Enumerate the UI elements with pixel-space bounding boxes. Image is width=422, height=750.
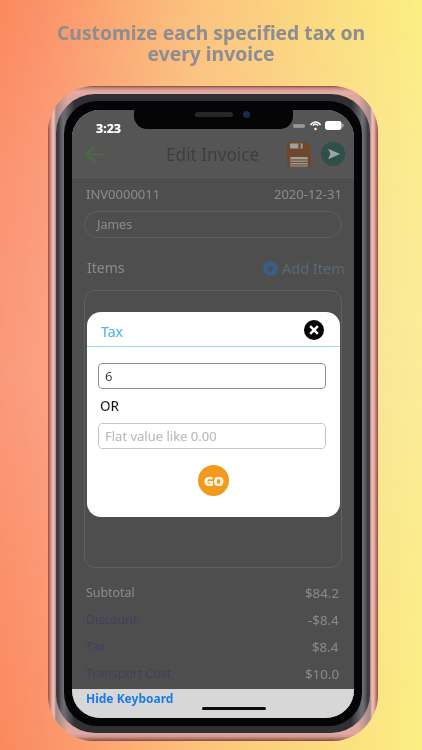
staticText: James: [97, 216, 133, 233]
staticText: GO: [204, 472, 224, 490]
staticText: $8.4: [312, 638, 339, 656]
button[interactable]: Transport Cost: [86, 660, 339, 687]
staticText: 6: [105, 367, 113, 385]
button[interactable]: Save: [283, 138, 315, 170]
staticText: Discount: [86, 611, 138, 628]
staticText: Customize each specified tax on every in…: [28, 19, 394, 67]
button[interactable]: Flat value like 0.00: [98, 423, 326, 449]
staticText: Transport Cost: [86, 665, 172, 682]
staticText: $84.2: [305, 584, 339, 602]
staticText: -$8.4: [308, 611, 339, 629]
staticText: 3:23: [96, 120, 121, 137]
staticText: Add Item: [282, 258, 345, 278]
button[interactable]: Hide Keyboard: [86, 690, 174, 706]
button[interactable]: Subtotal: [86, 579, 339, 606]
button[interactable]: Add Item: [263, 258, 345, 278]
button[interactable]: 6: [98, 363, 326, 389]
button[interactable]: Discount: [86, 606, 339, 633]
button[interactable]: Send: [317, 138, 349, 170]
button[interactable]: GO: [198, 465, 229, 496]
staticText: OR: [100, 397, 120, 415]
staticText: Items: [87, 258, 125, 277]
staticText: 2020-12-31: [274, 185, 342, 203]
staticText: $10.0: [305, 665, 339, 683]
staticText: Flat value like 0.00: [105, 427, 217, 445]
staticText: Edit Invoice: [166, 143, 260, 166]
button[interactable]: Tax: [86, 633, 339, 660]
staticText: Tax: [101, 322, 123, 341]
staticText: Tax: [86, 638, 106, 655]
button[interactable]: Back: [73, 134, 115, 175]
button[interactable]: Close: [302, 318, 326, 342]
staticText: INV0000011: [86, 185, 161, 203]
button[interactable]: James: [84, 211, 342, 238]
staticText: Subtotal: [86, 584, 135, 601]
